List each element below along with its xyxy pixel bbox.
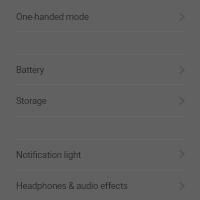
other: Open Headphones & audio effects	[176, 180, 188, 192]
button[interactable]: One-handed mode	[0, 0, 200, 31]
button[interactable]: Storage	[0, 85, 200, 116]
staticText: Notification light	[16, 149, 81, 160]
other: Open Battery	[176, 64, 188, 76]
staticText: Headphones & audio effects	[16, 180, 128, 191]
staticText: Storage	[16, 95, 47, 106]
other: Open Notification light	[176, 148, 188, 160]
button[interactable]: Notification light	[0, 140, 200, 170]
button[interactable]: Battery	[0, 55, 200, 84]
button[interactable]: Headphones & audio effects	[0, 171, 200, 200]
other: Open Storage	[176, 95, 188, 107]
other: Open One-handed mode	[176, 11, 188, 23]
staticText: Battery	[16, 64, 45, 75]
staticText: One-handed mode	[16, 11, 89, 22]
